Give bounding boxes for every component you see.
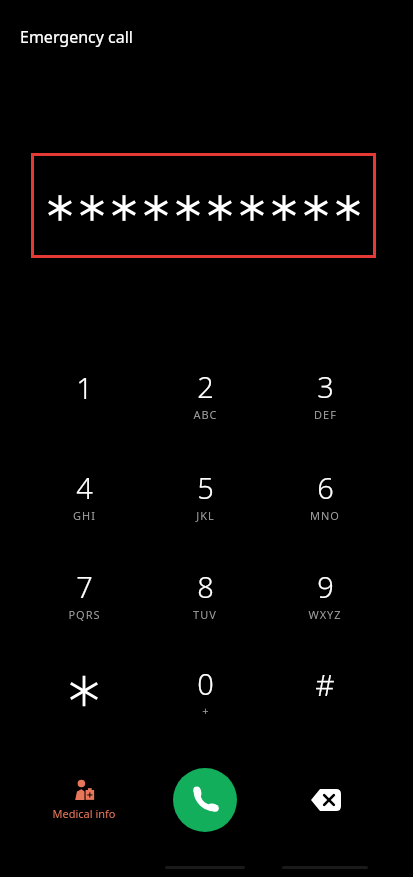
staticText: # — [315, 664, 335, 705]
staticText: PQRS — [68, 607, 101, 622]
staticText: GHI — [73, 508, 96, 523]
button[interactable]: 3 — [270, 348, 380, 440]
button[interactable]: 7 — [29, 548, 139, 640]
staticText: MNO — [310, 508, 340, 523]
staticText: 8 — [197, 567, 214, 606]
staticText: 7 — [76, 567, 93, 606]
staticText: 1 — [76, 368, 93, 407]
button[interactable] — [31, 153, 376, 258]
button[interactable] — [29, 645, 139, 737]
button[interactable]: 5 — [150, 449, 260, 541]
button[interactable]: 6 — [270, 449, 380, 541]
button[interactable]: Medical info — [49, 775, 119, 827]
button[interactable]: # — [270, 645, 380, 737]
staticText: 4 — [76, 468, 93, 507]
staticText: 2 — [197, 367, 214, 406]
button[interactable]: 1 — [29, 348, 139, 440]
staticText: 5 — [197, 468, 214, 507]
staticText: ABC — [193, 407, 218, 422]
staticText: 6 — [317, 468, 334, 507]
staticText: Emergency call — [20, 26, 133, 48]
button[interactable]: 0 — [150, 645, 260, 737]
staticText: + — [202, 703, 210, 718]
staticText: TUV — [193, 607, 217, 622]
button[interactable]: 8 — [150, 548, 260, 640]
staticText: JKL — [196, 508, 215, 523]
button[interactable]: 9 — [270, 548, 380, 640]
staticText: Medical info — [52, 806, 116, 821]
staticText: 0 — [197, 664, 214, 703]
staticText: WXYZ — [308, 607, 342, 622]
button[interactable]: 4 — [29, 449, 139, 541]
staticText: 3 — [317, 367, 334, 406]
staticText: 9 — [317, 567, 334, 606]
button[interactable]: 2 — [150, 348, 260, 440]
staticText: DEF — [314, 407, 337, 422]
button[interactable]: Backspace — [300, 778, 352, 822]
button[interactable]: Call — [173, 768, 237, 832]
